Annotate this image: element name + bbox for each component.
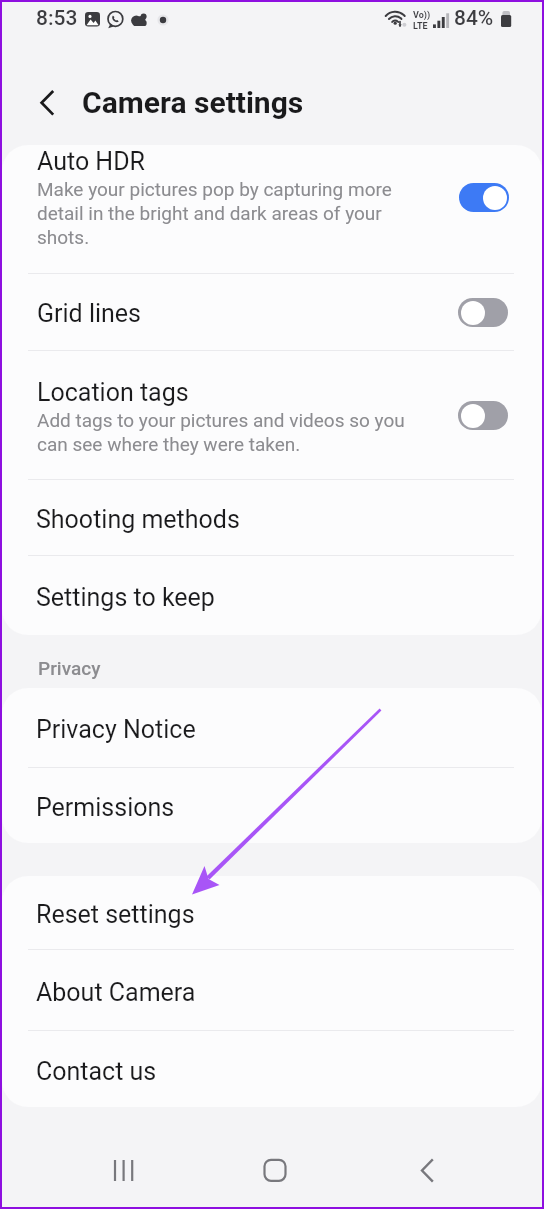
button[interactable]: Recents [100,1146,150,1192]
button[interactable]: Back [400,1146,450,1192]
button[interactable]: Privacy Notice [2,688,542,767]
button[interactable]: Contact us [2,1031,542,1107]
staticText: Make your pictures pop by capturing more… [37,178,419,249]
staticText: LTE [413,21,428,32]
staticText: About Camera [36,978,196,1007]
button[interactable]: Back [24,80,72,128]
staticText: Shooting methods [36,505,240,534]
button[interactable]: Auto HDR [2,145,542,273]
button[interactable]: Location tags [2,351,542,479]
staticText: Auto HDR [37,147,145,176]
staticText: Location tags [37,378,189,407]
staticText: Camera settings [82,85,304,120]
button[interactable]: Grid lines [2,274,542,350]
staticText: Privacy Notice [36,715,196,744]
button[interactable]: Shooting methods [2,480,542,555]
staticText: Permissions [36,793,175,822]
button[interactable]: Reset settings [2,876,542,949]
staticText: Settings to keep [36,583,215,612]
staticText: Privacy [38,657,101,679]
button[interactable]: Toggle off [458,401,508,430]
staticText: Reset settings [36,900,195,929]
button[interactable]: Toggle off [458,298,508,327]
staticText: Add tags to your pictures and videos so … [37,409,419,456]
button[interactable]: About Camera [2,950,542,1030]
staticText: 8:53 [36,6,78,31]
button[interactable]: Toggle on [459,183,509,212]
button[interactable]: Permissions [2,768,542,843]
staticText: Vo)) [413,10,431,21]
staticText: Contact us [36,1057,157,1086]
button[interactable]: Settings to keep [2,556,542,635]
staticText: Grid lines [37,299,142,328]
button[interactable]: Home [251,1146,301,1192]
staticText: 84% [454,6,494,31]
